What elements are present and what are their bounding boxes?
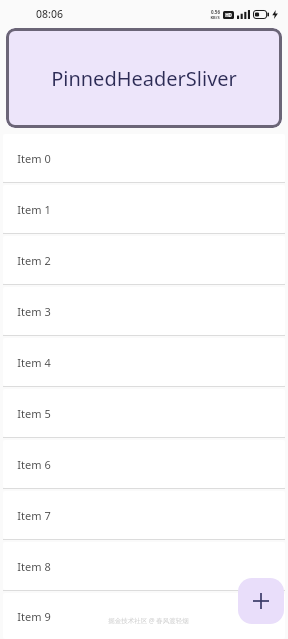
staticText: Item 3: [17, 304, 51, 319]
button[interactable]: Item 1: [3, 185, 285, 236]
staticText: Item 9: [17, 609, 51, 624]
staticText: HD: [225, 12, 232, 18]
button[interactable]: Item 7: [3, 491, 285, 542]
button[interactable]: Item 3: [3, 287, 285, 338]
staticText: Item 6: [17, 457, 51, 472]
button[interactable]: PinnedHeaderSliver: [6, 28, 282, 128]
staticText: Item 1: [17, 202, 51, 217]
button[interactable]: Add: [238, 578, 284, 624]
button[interactable]: Item 0: [3, 134, 285, 185]
staticText: 08:06: [36, 7, 63, 21]
button[interactable]: Item 9: [3, 593, 285, 639]
staticText: Item 5: [17, 406, 51, 421]
button[interactable]: Item 8: [3, 542, 285, 593]
staticText: 0.56: [211, 9, 220, 15]
button[interactable]: Item 2: [3, 236, 285, 287]
staticText: Item 4: [17, 355, 51, 370]
staticText: 掘金技术社区 @ 春风渡轻烟: [108, 616, 189, 625]
staticText: Item 7: [17, 508, 51, 523]
staticText: KB/S: [210, 15, 220, 20]
staticText: Item 2: [17, 253, 51, 268]
staticText: PinnedHeaderSliver: [51, 65, 237, 92]
button[interactable]: Item 6: [3, 440, 285, 491]
button[interactable]: Item 4: [3, 338, 285, 389]
staticText: Item 0: [17, 151, 51, 166]
staticText: Item 8: [17, 559, 51, 574]
button[interactable]: Item 5: [3, 389, 285, 440]
